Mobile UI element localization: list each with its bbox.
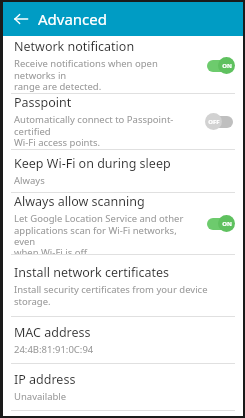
staticText: Unavailable <box>14 390 67 403</box>
staticText: MAC address <box>14 324 91 341</box>
staticText: Let Google Location Service and other ap… <box>14 212 199 254</box>
button[interactable]: Keep Wi-Fi on during sleep <box>3 150 243 192</box>
staticText: Install security certificates from your … <box>14 283 208 308</box>
button[interactable]: Always allow scanning <box>3 193 243 254</box>
button[interactable]: Toggle on <box>205 215 235 232</box>
staticText: Always <box>14 174 45 187</box>
button[interactable]: Passpoint <box>3 94 243 149</box>
staticText: Keep Wi-Fi on during sleep <box>14 155 171 172</box>
button[interactable]: Toggle off <box>205 113 235 130</box>
staticText: ON <box>222 220 232 228</box>
staticText: 24:4B:81:91:0C:94 <box>14 343 94 356</box>
staticText: IP address <box>14 371 76 388</box>
staticText: ON <box>222 62 232 70</box>
staticText: Automatically connect to Passpoint-certi… <box>14 113 199 149</box>
button[interactable]: Toggle on <box>205 57 235 74</box>
staticText: Install network certificates <box>14 264 169 281</box>
staticText: OFF <box>208 118 220 126</box>
button[interactable]: Network notification <box>3 38 243 93</box>
staticText: Receive notifications when open networks… <box>14 57 199 93</box>
button[interactable]: Install network certificates <box>3 255 243 316</box>
staticText: Network notification <box>14 38 135 55</box>
staticText: Advanced <box>38 9 108 29</box>
button[interactable]: IP address <box>3 364 243 410</box>
staticText: Always allow scanning <box>14 193 145 210</box>
button[interactable]: MAC address <box>3 317 243 363</box>
button[interactable]: Back <box>10 8 32 30</box>
staticText: Passpoint <box>14 94 72 111</box>
